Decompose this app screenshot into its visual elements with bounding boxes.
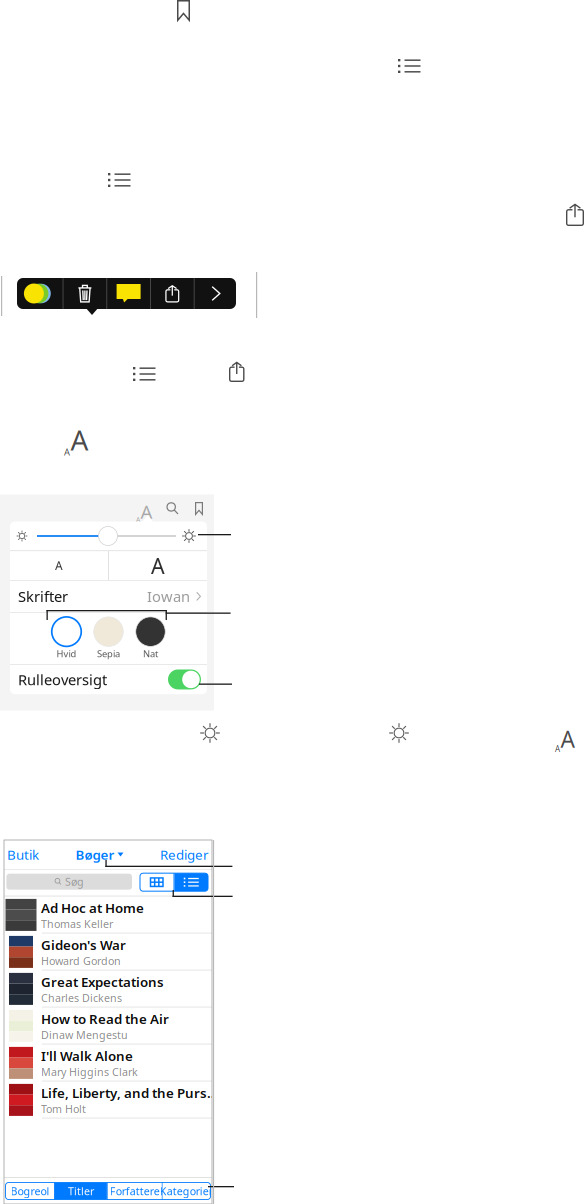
button[interactable]: Rediger [160, 840, 212, 869]
staticText: Bogreol [10, 1184, 49, 1198]
button[interactable]: Delete [63, 278, 106, 309]
staticText: A [70, 421, 88, 458]
staticText: Great Expectations [41, 973, 164, 991]
staticText: Forfattere [110, 1184, 160, 1198]
staticText: A [140, 499, 152, 524]
button[interactable]: Nat [129, 613, 171, 664]
staticText: Dinaw Mengestu [41, 1028, 128, 1042]
staticText: Thomas Keller [41, 917, 113, 931]
staticText: How to Read the Air [41, 1010, 169, 1028]
button[interactable]: Butik [4, 840, 39, 869]
button[interactable]: Highlight colour [16, 278, 63, 309]
button[interactable]: Great Expectations [4, 970, 212, 1007]
staticText: A [560, 724, 574, 754]
button[interactable]: Rulleoversigt [168, 669, 201, 689]
button[interactable]: Bogreol [6, 1182, 54, 1199]
button[interactable]: Ad Hoc at Home [4, 896, 212, 933]
staticText: Sepia [97, 647, 120, 660]
staticText: Rulleoversigt [18, 670, 107, 689]
staticText: Nat [143, 647, 158, 660]
staticText: Gideon's War [41, 936, 126, 954]
staticText: Titler [68, 1184, 94, 1198]
button[interactable]: Titler [55, 1182, 107, 1199]
button[interactable]: Forfattere [108, 1182, 162, 1199]
staticText: Skrifter [18, 587, 68, 606]
staticText: Butik [7, 846, 39, 863]
button[interactable]: Add note [107, 278, 150, 309]
button[interactable]: Life, Liberty, and the Purs… [4, 1081, 212, 1118]
staticText: Kategorier [160, 1184, 213, 1198]
staticText: A [555, 743, 560, 754]
staticText: Tom Holt [41, 1102, 86, 1116]
button[interactable]: Gideon's War [4, 933, 212, 970]
staticText: Charles Dickens [41, 991, 122, 1005]
staticText: Søg [65, 875, 84, 889]
button[interactable]: Kategorier [163, 1182, 210, 1199]
button[interactable]: List view [174, 873, 208, 891]
staticText: A [64, 446, 70, 458]
staticText: Rediger [160, 846, 209, 863]
staticText: Iowan [147, 587, 190, 606]
button[interactable]: Sepia [87, 613, 129, 664]
button[interactable]: How to Read the Air [4, 1007, 212, 1044]
staticText: Mary Higgins Clark [41, 1065, 138, 1079]
button[interactable]: Grid view [140, 873, 173, 891]
staticText: I'll Walk Alone [41, 1047, 133, 1065]
button[interactable]: I'll Walk Alone [4, 1044, 212, 1081]
button[interactable]: Share [151, 278, 194, 309]
staticText: A [55, 558, 63, 573]
staticText: A [136, 515, 140, 524]
staticText: Bøger [75, 846, 114, 863]
staticText: Hvid [56, 647, 76, 660]
button[interactable]: More [195, 278, 237, 309]
button[interactable]: Bøger [75, 840, 123, 869]
staticText: A [151, 551, 165, 580]
staticText: Ad Hoc at Home [41, 899, 144, 917]
staticText: Life, Liberty, and the Purs… [41, 1084, 218, 1102]
button[interactable]: Hvid [45, 613, 87, 664]
button[interactable]: Skrifter [10, 581, 207, 612]
staticText: Howard Gordon [41, 954, 121, 968]
